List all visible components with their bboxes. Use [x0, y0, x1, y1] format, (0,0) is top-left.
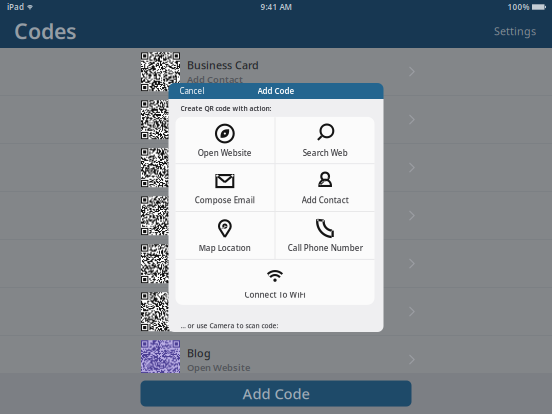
staticText: Settings	[494, 24, 536, 38]
button[interactable]: WiFi	[0, 288, 552, 335]
staticText: Compose Email	[195, 195, 255, 205]
staticText: Codes	[14, 17, 77, 45]
button[interactable]: Website	[0, 96, 552, 143]
staticText: WiFi	[187, 298, 209, 312]
staticText: Open Website	[187, 361, 250, 373]
staticText: … or use Camera to scan code:	[180, 321, 278, 330]
staticText: Cancel	[179, 86, 204, 96]
button[interactable]: Add Code	[140, 380, 411, 406]
staticText: Search Web	[303, 147, 348, 158]
staticText: 100%	[507, 2, 529, 12]
staticText: Location	[187, 202, 232, 216]
staticText: iPad	[7, 2, 24, 12]
button[interactable]: Open Website	[175, 117, 275, 163]
button[interactable]: Settings	[488, 19, 542, 43]
button[interactable]: Email	[0, 144, 552, 191]
button[interactable]: Connect To WiFi	[175, 260, 374, 304]
button[interactable]: Compose Email	[175, 164, 275, 211]
staticText: Open Website	[187, 121, 250, 133]
button[interactable]: Search Web	[275, 117, 375, 163]
staticText: Website	[187, 106, 228, 120]
staticText: Phone	[187, 250, 221, 264]
staticText: Map Location	[187, 217, 249, 229]
staticText: Call Phone Number	[187, 265, 274, 277]
staticText: Open Website	[198, 147, 252, 158]
staticText: Compose Email	[187, 169, 257, 181]
staticText: Add Code	[242, 384, 309, 403]
button[interactable]: Blog	[0, 336, 552, 383]
button[interactable]: Cancel	[174, 83, 209, 99]
button[interactable]: Phone	[0, 240, 552, 287]
staticText: Email	[187, 154, 215, 168]
button[interactable]: Map Location	[175, 212, 275, 259]
staticText: Call Phone Number	[288, 243, 363, 253]
staticText: Add Contact	[302, 195, 349, 205]
staticText: Business Card	[187, 58, 259, 72]
staticText: Map Location	[199, 243, 251, 253]
staticText: Create QR code with action:	[180, 104, 271, 113]
staticText: Blog	[187, 346, 211, 360]
button[interactable]: Call Phone Number	[275, 212, 375, 259]
staticText: Connect To WiFi	[244, 289, 305, 300]
staticText: Add Code	[257, 86, 294, 96]
button[interactable]: Business Card	[0, 48, 552, 95]
staticText: 9:41 AM	[260, 2, 291, 12]
staticText: Connect To WiFi	[187, 313, 260, 325]
staticText: Add Contact	[187, 73, 243, 85]
button[interactable]: Add Contact	[275, 164, 375, 211]
button[interactable]: Location	[0, 192, 552, 239]
